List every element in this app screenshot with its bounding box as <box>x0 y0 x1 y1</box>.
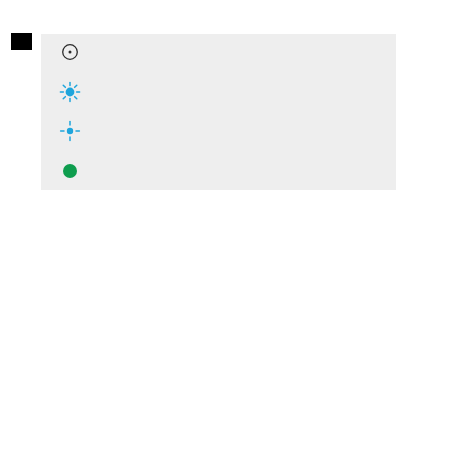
button[interactable]: Auto brightness off <box>56 38 84 66</box>
button[interactable]: Brightness low <box>56 117 84 145</box>
button[interactable]: Status connected <box>56 157 84 185</box>
button[interactable]: Brightness high <box>56 78 84 106</box>
